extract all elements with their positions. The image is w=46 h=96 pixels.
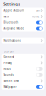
- staticText: Screen Time: [3, 79, 19, 83]
- button[interactable]: Wi-Fi: [2, 13, 44, 19]
- staticText: Apple Account: [3, 9, 24, 12]
- button[interactable]: Focus: [2, 66, 44, 72]
- button[interactable]: Screen Time: [2, 78, 44, 84]
- staticText: Settings: [3, 1, 20, 6]
- button[interactable]: Sounds: [2, 72, 44, 78]
- staticText: Privacy: [3, 61, 11, 65]
- staticText: Sounds: [3, 73, 13, 77]
- staticText: Wallpaper: [3, 85, 16, 89]
- staticText: Wi-Fi: [3, 15, 9, 18]
- button[interactable]: General: [2, 54, 44, 60]
- staticText: DISPLAY: [4, 50, 15, 53]
- staticText: Home: [32, 15, 40, 18]
- staticText: Airplane Mode: [3, 27, 24, 30]
- staticText: Bluetooth: [3, 21, 18, 24]
- button[interactable]: Notifications: [2, 38, 44, 44]
- staticText: General: [3, 55, 14, 59]
- button[interactable]: Bluetooth: [2, 19, 44, 25]
- button[interactable]: Privacy: [2, 60, 44, 66]
- button[interactable]: Apple Account: [2, 7, 44, 13]
- button[interactable]: Airplane Mode: [2, 25, 44, 31]
- button[interactable]: Wallpaper: [2, 84, 44, 90]
- staticText: Sam: [36, 9, 40, 12]
- staticText: Focus: [3, 67, 10, 71]
- staticText: Notifications: [3, 39, 20, 42]
